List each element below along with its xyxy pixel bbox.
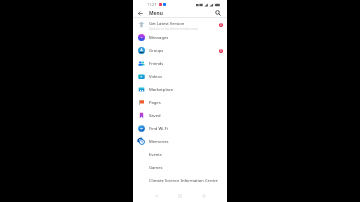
button[interactable]: Pages: [133, 96, 227, 109]
staticText: Get Latest Version: [149, 21, 185, 27]
staticText: Messages: [149, 35, 169, 41]
staticText: Memories: [149, 139, 169, 145]
staticText: Climate Science Information Centre: [149, 178, 218, 184]
button[interactable]: Games: [133, 161, 227, 174]
button[interactable]: Back: [151, 191, 161, 201]
button[interactable]: Search: [213, 9, 222, 17]
button[interactable]: Friends: [133, 57, 227, 70]
staticText: Friends: [149, 61, 164, 67]
staticText: 1: [220, 23, 222, 27]
button[interactable]: Find Wi-Fi: [133, 122, 227, 135]
staticText: Menu: [149, 10, 163, 17]
staticText: Pages: [149, 100, 161, 106]
staticText: Groups: [149, 48, 164, 54]
button[interactable]: Saved: [133, 109, 227, 122]
staticText: Events: [149, 152, 162, 158]
staticText: Videos: [149, 74, 162, 80]
button[interactable]: Climate Science Information Centre: [133, 174, 227, 187]
button[interactable]: Events: [133, 148, 227, 161]
staticText: Find Wi-Fi: [149, 126, 168, 132]
button[interactable]: Groups: [133, 44, 227, 57]
button[interactable]: Back: [136, 9, 144, 17]
button[interactable]: Memories: [133, 135, 227, 148]
button[interactable]: Videos: [133, 70, 227, 83]
staticText: Saved: [149, 113, 161, 119]
staticText: Marketplace: [149, 87, 174, 93]
button[interactable]: Messages: [133, 31, 227, 44]
button[interactable]: Get Latest Version: [133, 18, 227, 31]
staticText: Update to the latest version now: [149, 27, 198, 31]
button[interactable]: Home: [175, 191, 185, 201]
staticText: 1: [220, 49, 222, 53]
button[interactable]: Marketplace: [133, 83, 227, 96]
staticText: 11:27: [147, 2, 157, 7]
button[interactable]: Recent apps: [199, 191, 209, 201]
staticText: Games: [149, 165, 163, 171]
